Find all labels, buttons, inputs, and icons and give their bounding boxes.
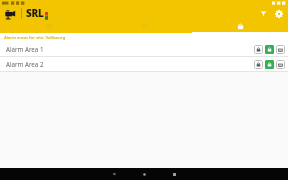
button[interactable]: Armed	[265, 45, 274, 54]
staticText: Alarm Area 2	[6, 60, 44, 68]
button[interactable]: Arm	[254, 60, 263, 69]
button[interactable]: Home	[136, 168, 152, 180]
button[interactable]: Disarm	[276, 45, 285, 54]
staticText: SRL	[26, 6, 44, 20]
staticText: Alarm areas for site: Voltbourg	[4, 35, 66, 41]
button[interactable]: Armed	[265, 60, 274, 69]
staticText: Alarm Area 1	[6, 45, 44, 53]
button[interactable]: Recent apps	[166, 168, 182, 180]
button[interactable]: Filter	[257, 7, 270, 20]
button[interactable]: Settings	[272, 7, 285, 20]
button[interactable]: Disarm	[276, 60, 285, 69]
button[interactable]: Alarm areas	[192, 21, 288, 33]
button[interactable]: Arm	[254, 45, 263, 54]
button[interactable]: Home	[3, 7, 17, 21]
button[interactable]: Back	[106, 168, 122, 180]
button[interactable]: Alarm Area 1	[0, 42, 288, 56]
button[interactable]: Alarm Area 2	[0, 57, 288, 71]
